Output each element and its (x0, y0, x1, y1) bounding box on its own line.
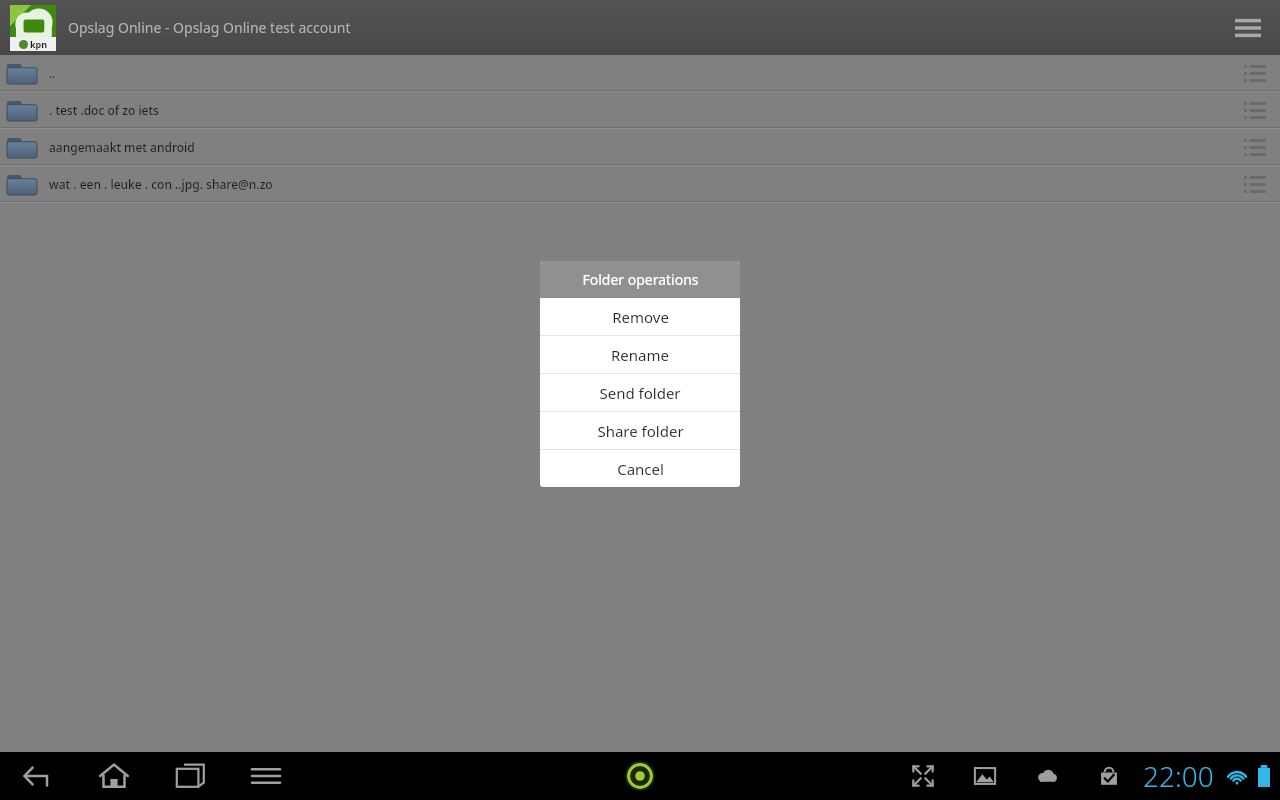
button[interactable]: Rename (540, 336, 740, 373)
button[interactable]: Fullscreen (899, 752, 947, 800)
staticText: Cancel (617, 459, 664, 479)
button[interactable]: Downloads (1085, 752, 1133, 800)
staticText: 22:00 (1143, 757, 1214, 795)
button[interactable]: . test .doc of zo iets (0, 92, 1280, 127)
button[interactable]: Home (90, 752, 138, 800)
button[interactable]: Recent apps (166, 752, 214, 800)
button[interactable]: Screenshot (961, 752, 1009, 800)
staticText: wat . een . leuke . con ..jpg. share@n.z… (49, 176, 273, 192)
staticText: Rename (611, 345, 669, 365)
button[interactable]: Folder operations (1238, 130, 1272, 164)
button[interactable]: .. (0, 55, 1280, 90)
staticText: aangemaakt met android (49, 139, 195, 155)
staticText: Send folder (599, 383, 681, 403)
staticText: kpn (30, 38, 48, 50)
staticText: Share folder (597, 421, 684, 441)
button[interactable]: Menu (1226, 6, 1270, 50)
button[interactable]: aangemaakt met android (0, 129, 1280, 164)
staticText: Remove (612, 307, 669, 327)
button[interactable]: Remove (540, 298, 740, 335)
staticText: .. (49, 65, 56, 81)
staticText: Opslag Online - Opslag Online test accou… (68, 18, 351, 37)
button[interactable]: Folder operations (1238, 56, 1272, 90)
button[interactable]: Share folder (540, 412, 740, 449)
button[interactable]: Send folder (540, 374, 740, 411)
button[interactable]: Assist (616, 752, 664, 800)
button[interactable]: Back (14, 752, 62, 800)
button[interactable]: Cloud (1023, 752, 1071, 800)
button[interactable]: wat . een . leuke . con ..jpg. share@n.z… (0, 166, 1280, 201)
button[interactable]: Folder operations (1238, 93, 1272, 127)
button[interactable]: Folder operations (1238, 167, 1272, 201)
button[interactable]: Cancel (540, 450, 740, 487)
button[interactable]: Menu (242, 752, 290, 800)
staticText: Folder operations (582, 270, 699, 289)
staticText: . test .doc of zo iets (49, 102, 159, 118)
